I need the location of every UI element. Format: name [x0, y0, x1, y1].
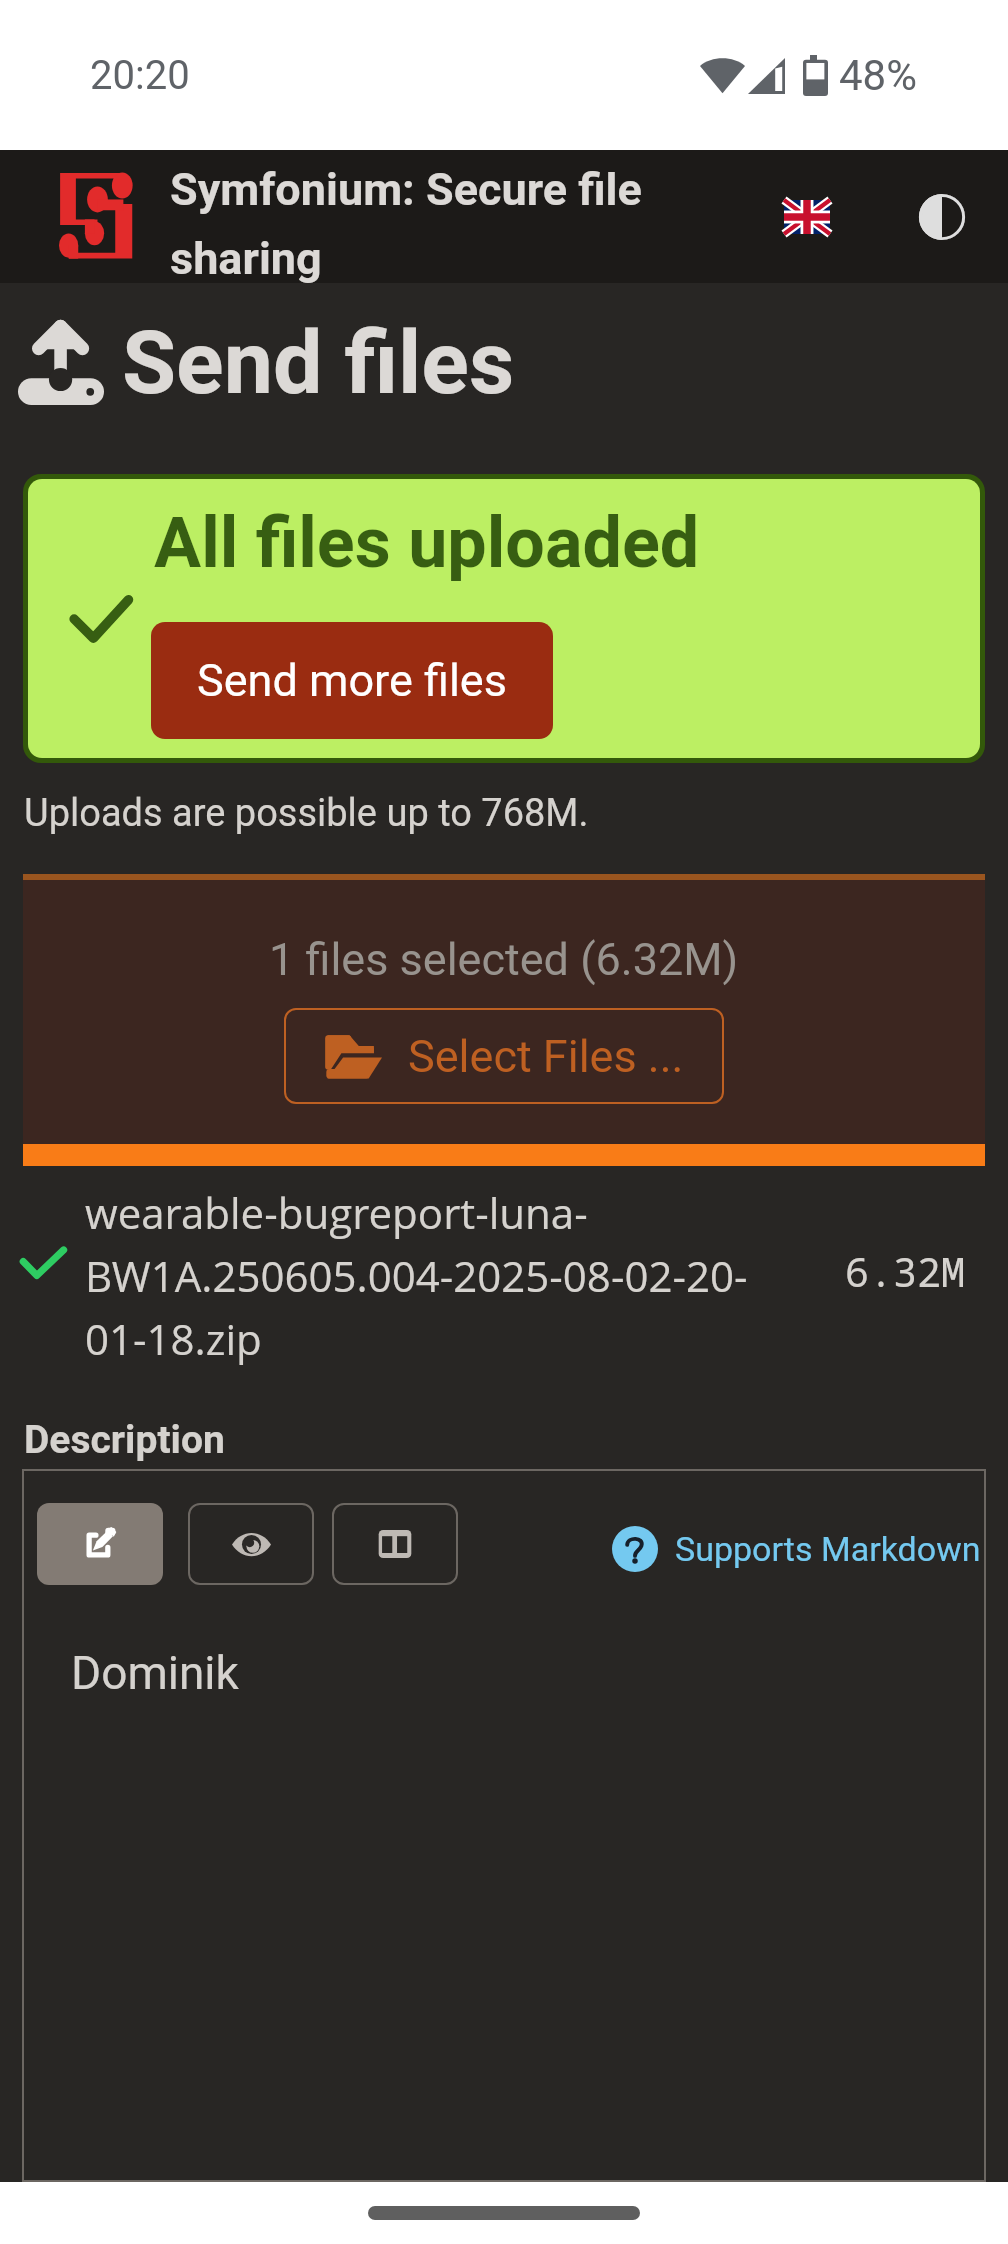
- staticText: 1 files selected (6.32M): [269, 933, 739, 986]
- staticText: Symfonium: Secure file sharing: [170, 150, 660, 283]
- staticText: Dominik: [71, 1646, 239, 1700]
- staticText: Supports Markdown: [675, 1529, 981, 1569]
- button[interactable]: Send more files: [151, 622, 553, 739]
- staticText: Send more files: [197, 654, 507, 707]
- staticText: 48%: [839, 51, 917, 100]
- staticText: wearable-bugreport-luna- BW1A.250605.004…: [85, 1180, 825, 1369]
- button[interactable]: Language: [759, 169, 855, 265]
- staticText: 6.32M: [845, 1244, 965, 1298]
- button[interactable]: Split view: [332, 1503, 458, 1585]
- staticText: All files uploaded: [154, 502, 700, 584]
- staticText: Description: [24, 1417, 225, 1463]
- staticText: 20:20: [90, 52, 190, 99]
- staticText: Send files: [122, 311, 515, 414]
- button[interactable]: Select Files ...: [284, 1008, 724, 1104]
- button[interactable]: Preview: [188, 1503, 314, 1585]
- staticText: Uploads are possible up to 768M.: [24, 791, 589, 836]
- staticText: Select Files ...: [408, 1030, 684, 1083]
- button[interactable]: Edit: [37, 1503, 163, 1585]
- button[interactable]: Supports Markdown: [612, 1526, 981, 1572]
- button[interactable]: Toggle theme: [894, 169, 990, 265]
